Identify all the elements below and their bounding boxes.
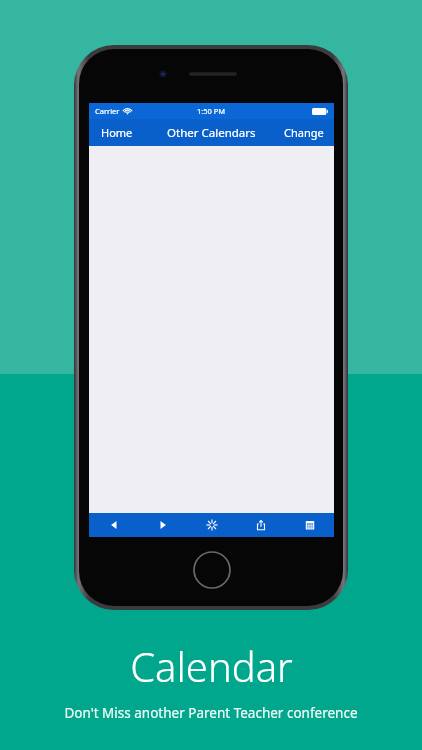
staticText: Change: [284, 125, 324, 140]
button[interactable]: Calendar: [285, 513, 334, 537]
button[interactable]: Loading: [187, 513, 236, 537]
staticText: Calendar: [130, 639, 293, 693]
button[interactable]: Share: [236, 513, 285, 537]
staticText: Carrier: [95, 106, 120, 116]
staticText: 1:50 PM: [197, 106, 226, 116]
button[interactable]: Home: [97, 121, 137, 144]
button[interactable]: Back: [89, 513, 138, 537]
button[interactable]: Forward: [138, 513, 187, 537]
staticText: Home: [101, 125, 133, 140]
staticText: Other Calendars: [167, 125, 256, 141]
button[interactable]: Change: [280, 121, 328, 144]
staticText: Don't Miss another Parent Teacher confer…: [64, 704, 358, 722]
